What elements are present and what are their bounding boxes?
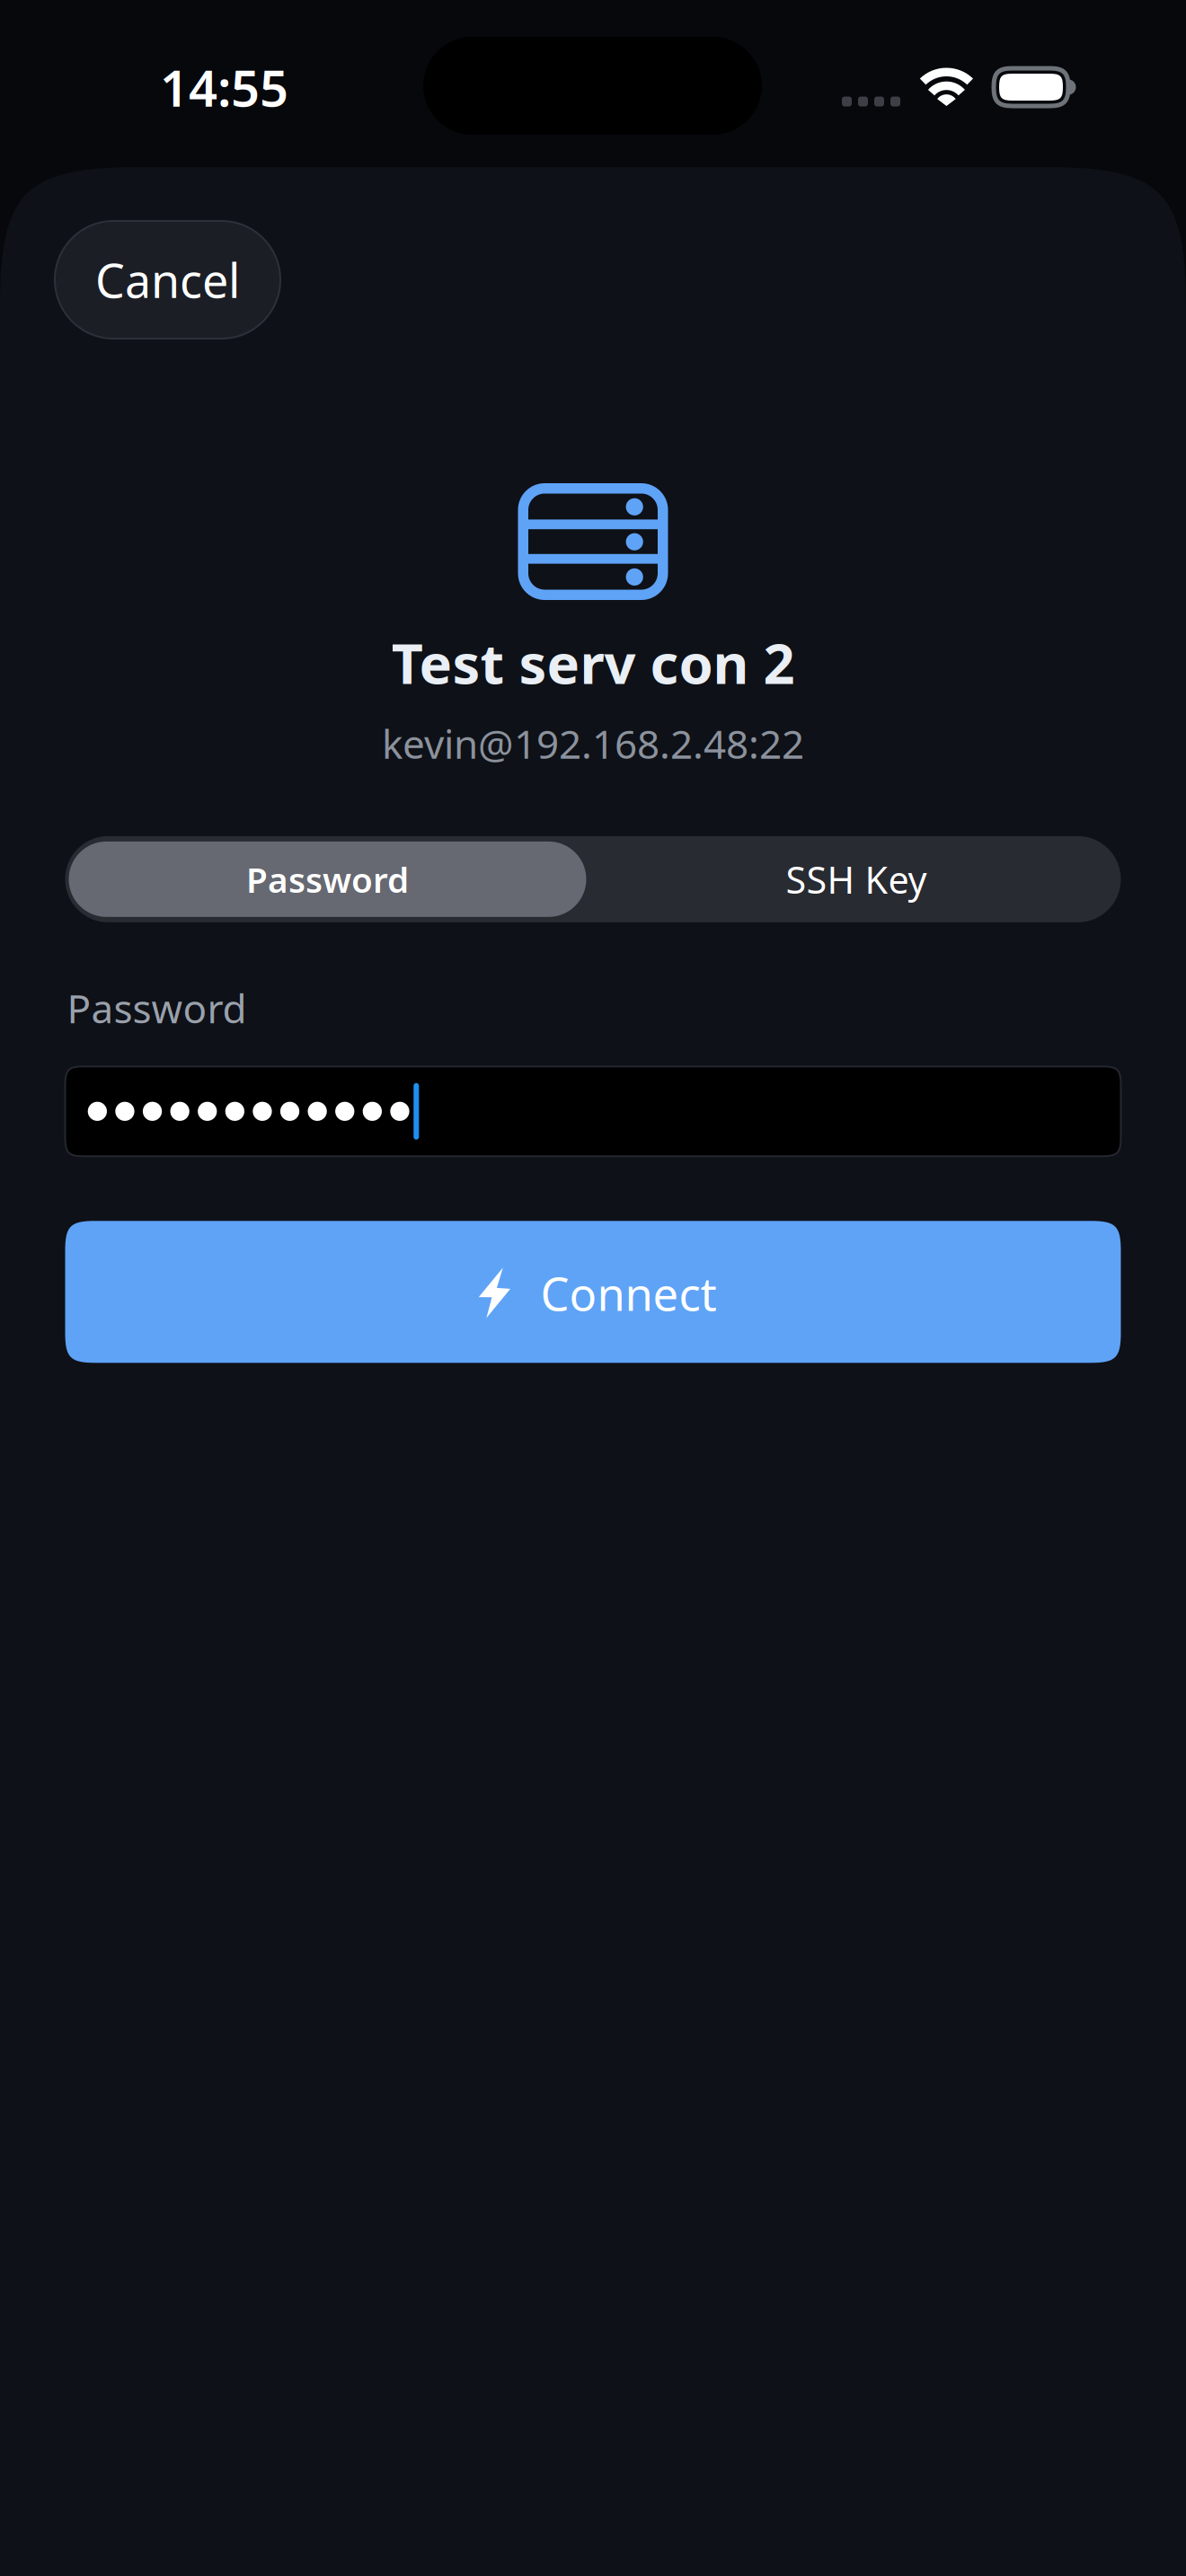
staticText: kevin@192.168.2.48:22 [382, 717, 804, 770]
button[interactable]: Cancel [55, 221, 280, 339]
staticText: Password [246, 856, 409, 902]
staticText: 14:55 [160, 54, 288, 121]
staticText: Test serv con 2 [391, 626, 795, 699]
button[interactable]: SSH Key [593, 842, 1119, 917]
staticText: Password [67, 982, 247, 1034]
staticText: SSH Key [786, 855, 927, 904]
button[interactable]: Connect [65, 1221, 1121, 1363]
button[interactable]: Password [69, 842, 586, 917]
staticText: Cancel [95, 249, 240, 311]
staticText: Connect [540, 1263, 717, 1324]
